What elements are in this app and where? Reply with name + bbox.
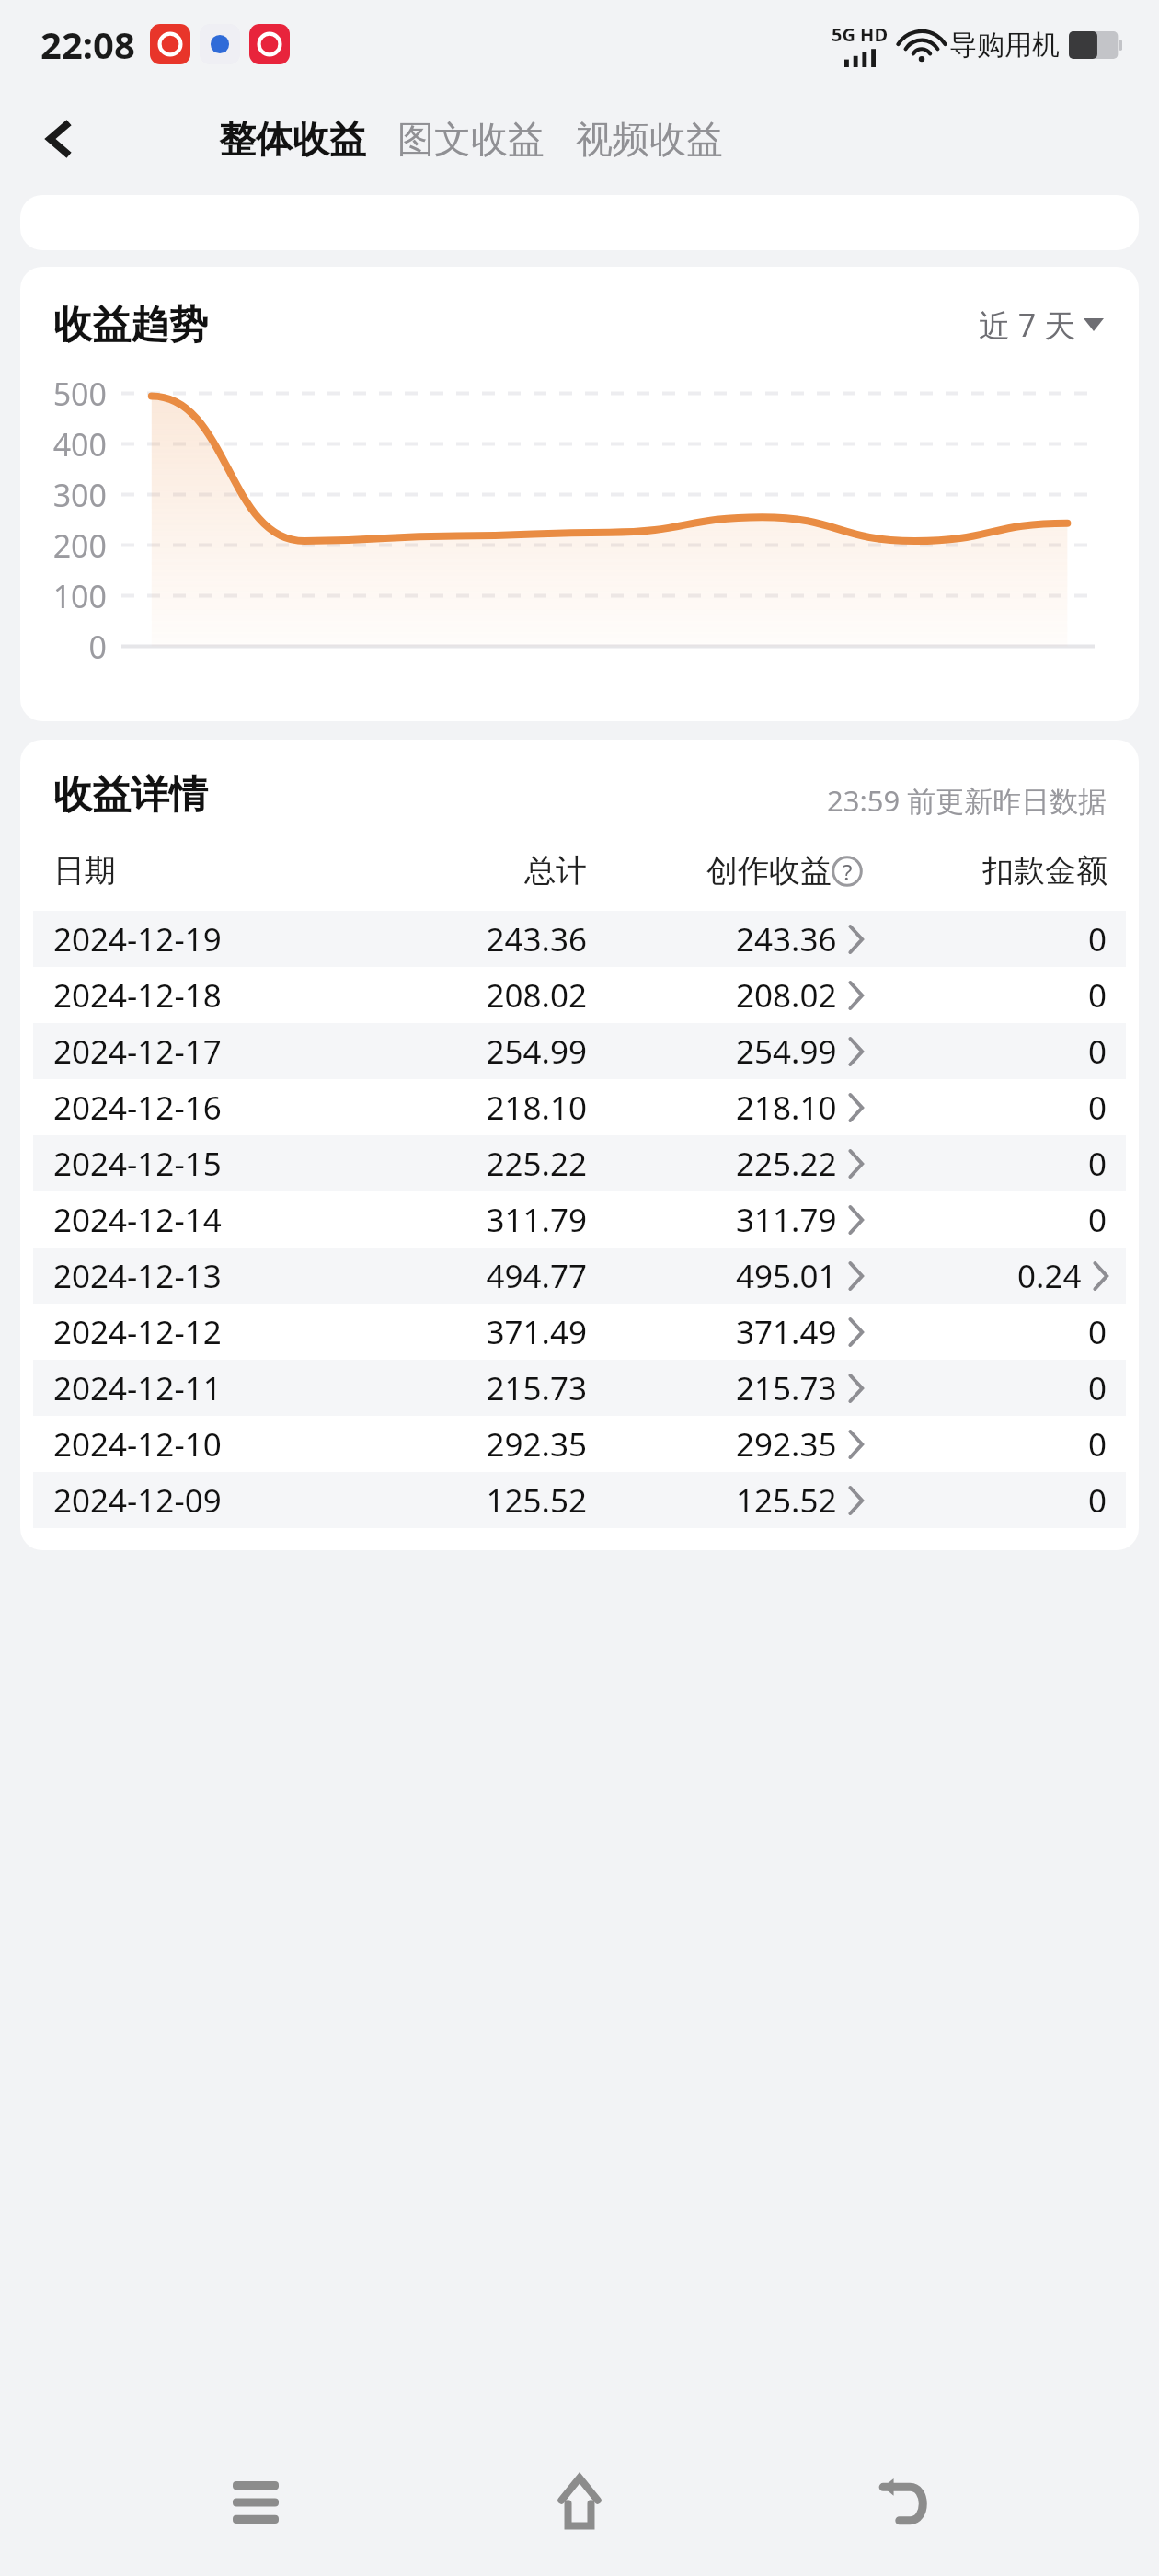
- button[interactable]: 2024-12-10: [33, 1416, 1126, 1472]
- staticText: 215.73: [736, 1366, 837, 1410]
- button[interactable]: 近 7 天: [973, 298, 1109, 351]
- staticText: 22:08: [40, 19, 135, 69]
- staticText: 400: [52, 423, 107, 466]
- staticText: 2024-12-18: [53, 973, 357, 1018]
- button[interactable]: 视频收益: [576, 109, 723, 169]
- staticText: 311.79: [736, 1198, 837, 1242]
- staticText: 收益趋势: [53, 301, 208, 350]
- button[interactable]: Back: [835, 2433, 973, 2571]
- button[interactable]: Home: [511, 2433, 648, 2571]
- staticText: 254.99: [736, 1029, 837, 1074]
- staticText: 0: [1088, 917, 1107, 961]
- button[interactable]: Help: [832, 856, 863, 887]
- staticText: 0: [1088, 1366, 1107, 1410]
- staticText: 225.22: [736, 1142, 837, 1186]
- staticText: 0: [1088, 1422, 1107, 1466]
- staticText: 0: [1088, 1086, 1107, 1130]
- staticText: 2024-12-12: [53, 1310, 357, 1354]
- staticText: 215.73: [357, 1366, 587, 1410]
- staticText: 创作收益: [706, 851, 832, 891]
- staticText: 2024-12-11: [53, 1366, 357, 1410]
- staticText: 300: [52, 474, 107, 516]
- staticText: 2024-12-15: [53, 1142, 357, 1186]
- staticText: 371.49: [736, 1310, 837, 1354]
- staticText: 371.49: [357, 1310, 587, 1354]
- staticText: 225.22: [357, 1142, 587, 1186]
- staticText: 254.99: [357, 1029, 587, 1074]
- staticText: 311.79: [357, 1198, 587, 1242]
- staticText: 扣款金额: [982, 851, 1107, 891]
- button[interactable]: 2024-12-11: [33, 1360, 1126, 1416]
- button[interactable]: 2024-12-18: [33, 967, 1126, 1023]
- staticText: 0: [1088, 1029, 1107, 1074]
- button[interactable]: 2024-12-17: [33, 1023, 1126, 1079]
- button[interactable]: Back: [18, 98, 99, 179]
- button[interactable]: Recents: [187, 2433, 325, 2571]
- staticText: 218.10: [736, 1086, 837, 1130]
- staticText: 23:59 前更新昨日数据: [827, 781, 1107, 820]
- staticText: 495.01: [736, 1254, 837, 1298]
- staticText: 292.35: [357, 1422, 587, 1466]
- staticText: 日期: [53, 851, 357, 891]
- staticText: 整体收益: [219, 116, 366, 162]
- staticText: 0: [88, 626, 107, 668]
- staticText: 2024-12-10: [53, 1422, 357, 1466]
- button[interactable]: 2024-12-12: [33, 1304, 1126, 1360]
- button[interactable]: 2024-12-09: [33, 1472, 1126, 1528]
- staticText: 2024-12-16: [53, 1086, 357, 1130]
- staticText: 图文收益: [397, 116, 545, 162]
- staticText: 292.35: [736, 1422, 837, 1466]
- button[interactable]: 2024-12-16: [33, 1079, 1126, 1135]
- staticText: 0.24: [1017, 1254, 1082, 1298]
- staticText: 218.10: [357, 1086, 587, 1130]
- staticText: 243.36: [736, 917, 837, 961]
- staticText: 125.52: [357, 1478, 587, 1523]
- staticText: 收益详情: [53, 771, 208, 820]
- staticText: 视频收益: [576, 116, 723, 162]
- staticText: 200: [52, 524, 107, 567]
- staticText: 近 7 天: [979, 304, 1076, 346]
- staticText: 0: [1088, 1478, 1107, 1523]
- staticText: 0: [1088, 973, 1107, 1018]
- staticText: 0: [1088, 1310, 1107, 1354]
- staticText: 导购用机: [949, 28, 1060, 63]
- staticText: 2024-12-19: [53, 917, 357, 961]
- staticText: 2024-12-09: [53, 1478, 357, 1523]
- staticText: 2024-12-14: [53, 1198, 357, 1242]
- staticText: 5G HD: [832, 22, 889, 47]
- staticText: 总计: [357, 851, 587, 891]
- staticText: 0: [1088, 1198, 1107, 1242]
- staticText: 243.36: [357, 917, 587, 961]
- button[interactable]: 整体收益: [219, 109, 366, 169]
- staticText: 500: [52, 373, 107, 415]
- button[interactable]: 2024-12-15: [33, 1135, 1126, 1191]
- staticText: 0: [1088, 1142, 1107, 1186]
- button[interactable]: 2024-12-13: [33, 1248, 1126, 1304]
- staticText: 2024-12-13: [53, 1254, 357, 1298]
- staticText: 100: [52, 575, 107, 617]
- staticText: 494.77: [357, 1254, 587, 1298]
- staticText: 208.02: [736, 973, 837, 1018]
- button[interactable]: 图文收益: [397, 109, 545, 169]
- staticText: ?: [843, 857, 853, 887]
- staticText: 125.52: [736, 1478, 837, 1523]
- staticText: 2024-12-17: [53, 1029, 357, 1074]
- button[interactable]: 2024-12-19: [33, 911, 1126, 967]
- button[interactable]: 2024-12-14: [33, 1191, 1126, 1248]
- staticText: 208.02: [357, 973, 587, 1018]
